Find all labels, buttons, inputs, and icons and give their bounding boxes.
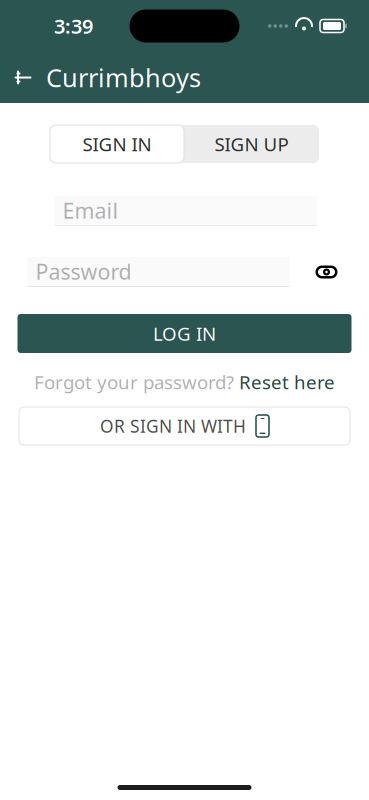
staticText: LOG IN	[153, 321, 216, 346]
button[interactable]: OR SIGN IN WITH	[19, 407, 350, 445]
button[interactable]: Back	[0, 52, 46, 103]
button[interactable]: SIGN UP	[184, 125, 319, 163]
button[interactable]: LOG IN	[17, 314, 351, 353]
staticText: OR SIGN IN WITH	[100, 414, 246, 437]
staticText: Forgot your password?	[34, 370, 234, 394]
button[interactable]: Show password	[309, 257, 343, 287]
staticText: Currimbhoys	[46, 61, 201, 94]
staticText: SIGN UP	[214, 132, 288, 156]
button[interactable]: SIGN IN	[50, 125, 184, 163]
staticText: SIGN IN	[82, 132, 151, 156]
staticText: Email	[62, 196, 118, 225]
button[interactable]: Forgot your password?	[34, 371, 335, 393]
staticText: Reset here	[239, 370, 335, 394]
staticText: 3:39	[54, 13, 93, 39]
staticText: Password	[35, 257, 131, 286]
